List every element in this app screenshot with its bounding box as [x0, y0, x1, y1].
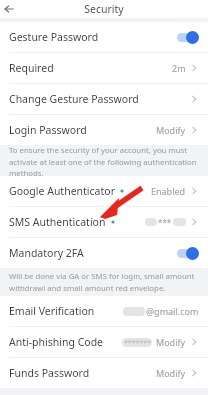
button[interactable]: Google Authenticator — [0, 176, 208, 206]
staticText: Gesture Password — [9, 30, 99, 44]
staticText: 2m — [172, 62, 186, 74]
staticText: Enabled — [151, 185, 186, 197]
button[interactable]: SMS Authentication — [0, 207, 208, 237]
button[interactable]: Mandatory 2FA — [0, 238, 208, 268]
button[interactable]: Funds Password — [0, 358, 208, 388]
button[interactable]: Gesture Password — [0, 22, 208, 52]
staticText: *** — [158, 217, 172, 228]
button[interactable]: Back — [0, 0, 18, 18]
staticText: Login Password — [9, 123, 87, 137]
staticText: @gmail.com — [146, 305, 199, 317]
button[interactable] — [175, 31, 199, 44]
button[interactable]: Login Password — [0, 115, 208, 145]
button[interactable]: Change Gesture Password — [0, 84, 208, 114]
button[interactable]: Required — [0, 53, 208, 83]
staticText: SMS Authentication — [9, 215, 106, 229]
staticText: Change Gesture Password — [9, 92, 139, 106]
staticText: ******* — [124, 338, 151, 347]
staticText: To ensure the security of your account, … — [9, 145, 199, 176]
staticText: Security — [84, 2, 124, 16]
staticText: Will be done via GA or SMS for login, sm… — [9, 271, 199, 293]
staticText: Google Authenticator — [9, 184, 115, 198]
button[interactable] — [175, 247, 199, 260]
staticText: Anti-phishing Code — [9, 335, 104, 349]
staticText: Funds Password — [9, 366, 90, 380]
button[interactable]: Email Verification — [0, 296, 208, 326]
staticText: Modify — [156, 336, 186, 348]
staticText: Modify — [156, 367, 186, 379]
staticText: Email Verification — [9, 304, 95, 318]
button[interactable]: Anti-phishing Code — [0, 327, 208, 357]
staticText: Mandatory 2FA — [9, 246, 84, 260]
staticText: Modify — [156, 124, 186, 136]
staticText: Required — [9, 61, 54, 75]
